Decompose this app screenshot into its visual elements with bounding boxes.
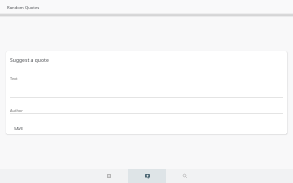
- button[interactable]: SAVE: [10, 124, 28, 133]
- button[interactable]: Quotes: [90, 169, 128, 183]
- button[interactable]: Search: [166, 169, 204, 183]
- button[interactable]: Add quote: [128, 169, 166, 183]
- staticText: Random Quotes: [7, 5, 40, 11]
- staticText: Suggest a quote: [10, 57, 49, 64]
- staticText: Text: [10, 76, 18, 81]
- staticText: SAVE: [14, 126, 24, 131]
- staticText: Author: [10, 108, 23, 113]
